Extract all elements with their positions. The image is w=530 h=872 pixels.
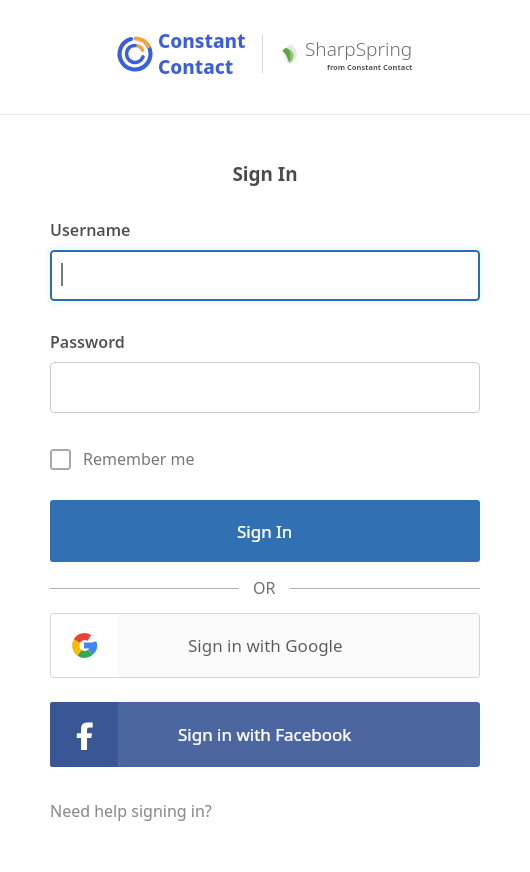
button[interactable]: Sign in with Google <box>50 613 480 678</box>
button[interactable] <box>50 250 480 301</box>
button[interactable]: Remember me <box>50 446 195 472</box>
staticText: from Constant Contact <box>327 62 413 72</box>
button[interactable]: Need help signing in? <box>50 800 212 822</box>
staticText: SharpSpring <box>305 36 413 62</box>
staticText: Sign In <box>0 161 530 187</box>
staticText: Sign in with Google <box>188 634 343 657</box>
staticText: Password <box>50 331 125 353</box>
button[interactable]: Sign in with Facebook <box>50 702 480 767</box>
staticText: Username <box>50 219 131 241</box>
staticText: Remember me <box>83 448 195 470</box>
staticText: Contact <box>158 54 234 80</box>
staticText: Constant <box>158 28 246 54</box>
staticText: Sign In <box>237 520 293 543</box>
staticText: Sign in with Facebook <box>178 723 352 746</box>
button[interactable] <box>50 362 480 413</box>
staticText: OR <box>253 577 276 599</box>
button[interactable]: Sign In <box>50 500 480 562</box>
